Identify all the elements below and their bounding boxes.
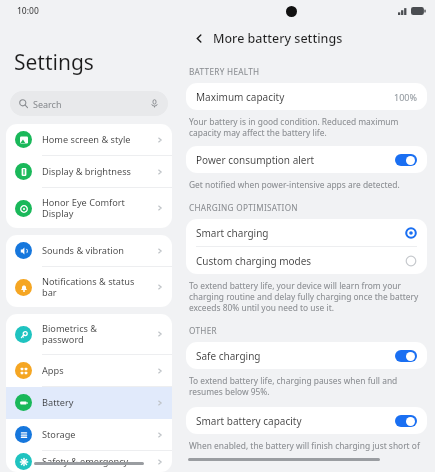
staticText: Search	[33, 98, 62, 110]
button[interactable]: Smart charging	[186, 219, 427, 246]
staticText: To extend battery life, charging pauses …	[189, 375, 398, 397]
staticText: Apps	[42, 364, 156, 377]
staticText: To extend battery life, your device will…	[189, 280, 419, 313]
button[interactable]: Sounds & vibration	[6, 235, 172, 266]
staticText: Power consumption alert	[196, 153, 395, 167]
button[interactable]: Maximum capacity	[186, 83, 427, 110]
button[interactable]: Safety & emergency	[6, 451, 172, 472]
button[interactable]: Search	[10, 91, 168, 116]
staticText: CHARGING OPTIMISATION	[189, 202, 298, 213]
staticText: Battery	[42, 396, 156, 409]
staticText: Safe charging	[196, 349, 395, 363]
button[interactable]: Smart battery capacity	[186, 407, 427, 434]
staticText: Smart charging	[196, 226, 405, 240]
button[interactable]: Honor Eye Comfort Display	[6, 188, 172, 228]
staticText: Smart battery capacity	[196, 414, 395, 428]
staticText: BATTERY HEALTH	[189, 66, 260, 77]
staticText: Your battery is in good condition. Reduc…	[189, 116, 399, 138]
button[interactable]: Apps	[6, 355, 172, 386]
staticText: Get notified when power-intensive apps a…	[189, 179, 400, 190]
staticText: Biometrics & password	[42, 322, 156, 346]
button[interactable]: Custom charging modes	[186, 247, 427, 274]
button[interactable]: Battery	[6, 387, 172, 418]
staticText: OTHER	[189, 325, 217, 336]
staticText: More battery settings	[213, 30, 343, 47]
staticText: Settings	[14, 48, 94, 77]
button[interactable]: Notifications & status bar	[6, 267, 172, 307]
button[interactable]: Safe charging	[186, 342, 427, 369]
staticText: Honor Eye Comfort Display	[42, 196, 156, 220]
staticText: Storage	[42, 428, 156, 441]
staticText: Notifications & status bar	[42, 275, 156, 299]
button[interactable]: Back	[189, 28, 209, 48]
button[interactable]: Home screen & style	[6, 124, 172, 155]
button[interactable]: Display & brightness	[6, 156, 172, 187]
staticText: Safety & emergency	[42, 455, 156, 468]
staticText: Sounds & vibration	[42, 244, 156, 257]
staticText: Display & brightness	[42, 165, 156, 178]
staticText: 100%	[394, 91, 417, 103]
button[interactable]: Biometrics & password	[6, 314, 172, 354]
staticText: Maximum capacity	[196, 90, 394, 104]
staticText: Custom charging modes	[196, 254, 405, 268]
staticText: Home screen & style	[42, 133, 156, 146]
staticText: 10:00	[17, 5, 39, 17]
button[interactable]: Power consumption alert	[186, 146, 427, 173]
button[interactable]: Storage	[6, 419, 172, 450]
staticText: When enabled, the battery will finish ch…	[189, 440, 420, 451]
